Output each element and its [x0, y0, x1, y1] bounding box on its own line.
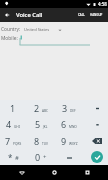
- button[interactable]: Back: [0, 8, 14, 22]
- staticText: DEF: [70, 109, 76, 113]
- button[interactable]: Back: [11, 165, 33, 180]
- staticText: 3: [62, 102, 68, 114]
- button[interactable]: CALL: [76, 9, 87, 21]
- button[interactable]: Mobile number: [0, 34, 108, 46]
- staticText: MNO: [69, 125, 77, 129]
- staticText: United States: [24, 27, 50, 32]
- staticText: TUV: [42, 142, 49, 146]
- button[interactable]: [83, 116, 108, 132]
- staticText: HANGUP: [90, 13, 103, 17]
- button[interactable]: Done: [83, 149, 108, 165]
- staticText: Country:: [1, 26, 21, 33]
- staticText: 7: [5, 135, 11, 147]
- staticText: 0: [35, 151, 41, 163]
- button[interactable]: 0: [27, 149, 55, 165]
- button[interactable]: [55, 149, 83, 165]
- button[interactable]: [83, 100, 108, 116]
- staticText: 1: [10, 102, 16, 114]
- staticText: 9: [61, 135, 67, 147]
- staticText: 2: [34, 102, 40, 114]
- staticText: Mobile:: [1, 35, 18, 42]
- staticText: Voice Call: [16, 11, 43, 19]
- button[interactable]: 5: [27, 116, 55, 132]
- staticText: 4:58: [98, 1, 107, 7]
- staticText: ABC: [42, 109, 49, 113]
- button[interactable]: Recents: [76, 165, 98, 180]
- button[interactable]: *: [0, 149, 27, 165]
- staticText: JKL: [43, 125, 48, 129]
- staticText: PQRS: [13, 142, 22, 146]
- button[interactable]: 1: [0, 100, 27, 116]
- staticText: WXYZ: [69, 142, 78, 146]
- button[interactable]: 3: [55, 100, 83, 116]
- button[interactable]: 9: [55, 133, 83, 149]
- button[interactable]: 2: [27, 100, 55, 116]
- button[interactable]: 7: [0, 133, 27, 149]
- button[interactable]: Home: [43, 165, 65, 180]
- button[interactable]: 8: [27, 133, 55, 149]
- button[interactable]: 4: [0, 116, 27, 132]
- staticText: 6: [61, 118, 67, 130]
- staticText: +: [43, 153, 47, 161]
- button[interactable]: 6: [55, 116, 83, 132]
- button[interactable]: Backspace: [83, 133, 108, 149]
- button[interactable]: HANGUP: [88, 9, 105, 21]
- staticText: GHI: [14, 125, 20, 129]
- staticText: CALL: [78, 13, 85, 17]
- staticText: 5: [35, 118, 41, 130]
- staticText: #: [15, 154, 19, 162]
- staticText: *: [8, 152, 13, 163]
- button[interactable]: United States: [24, 27, 62, 32]
- staticText: 8: [34, 135, 40, 147]
- staticText: 4: [6, 118, 12, 130]
